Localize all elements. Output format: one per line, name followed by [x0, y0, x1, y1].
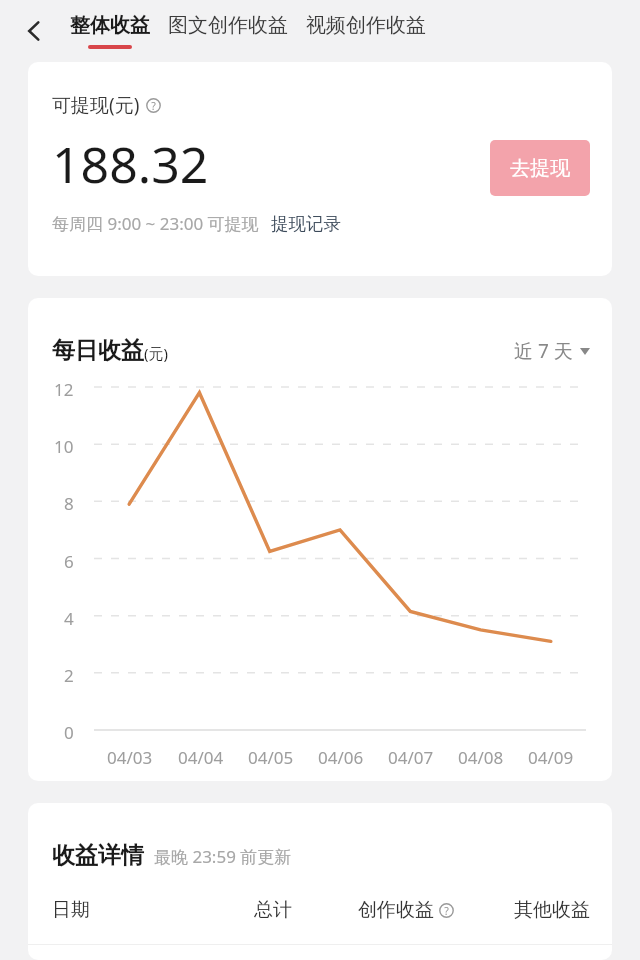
staticText: 6 [64, 550, 74, 568]
staticText: 12 [54, 378, 74, 396]
staticText: 去提现 [510, 156, 570, 181]
staticText: 收益详情 [52, 841, 144, 870]
button[interactable]: 提现记录 [271, 213, 341, 235]
staticText: 0 [64, 721, 74, 739]
staticText: 188.32 [52, 130, 209, 198]
staticText: 每日收益 [52, 336, 144, 365]
staticText: 4 [64, 607, 74, 625]
button[interactable]: 近 7 天 [514, 338, 590, 364]
staticText: 2 [64, 664, 74, 682]
staticText: 其他收益 [514, 898, 590, 922]
staticText: 日期 [52, 898, 90, 922]
button[interactable]: Back [8, 5, 60, 57]
staticText: 总计 [254, 898, 292, 922]
staticText: 04/04 [178, 746, 224, 769]
button[interactable]: 视频创作收益 [306, 13, 426, 49]
staticText: 10 [54, 435, 74, 453]
staticText: 图文创作收益 [168, 13, 288, 38]
staticText: 每周四 9:00 ~ 23:00 可提现 [52, 212, 259, 235]
button[interactable]: 图文创作收益 [168, 13, 288, 49]
staticText: 04/05 [248, 746, 294, 769]
staticText: 视频创作收益 [306, 13, 426, 38]
staticText: 04/09 [528, 746, 574, 769]
staticText: 创作收益 [358, 898, 434, 922]
staticText: (元) [144, 343, 169, 363]
staticText: 近 7 天 [514, 338, 573, 364]
staticText: 提现记录 [271, 213, 341, 235]
staticText: 04/03 [107, 746, 153, 769]
staticText: 8 [64, 492, 74, 510]
staticText: 04/07 [388, 746, 434, 769]
staticText: ? [444, 904, 449, 918]
staticText: 04/08 [458, 746, 504, 769]
staticText: 04/06 [318, 746, 364, 769]
staticText: 整体收益 [70, 13, 150, 38]
staticText: 可提现(元) [52, 92, 140, 118]
staticText: ? [151, 99, 156, 113]
staticText: 最晚 23:59 前更新 [154, 845, 292, 868]
button[interactable]: 去提现 [490, 140, 590, 196]
button[interactable]: 整体收益 [70, 13, 150, 49]
